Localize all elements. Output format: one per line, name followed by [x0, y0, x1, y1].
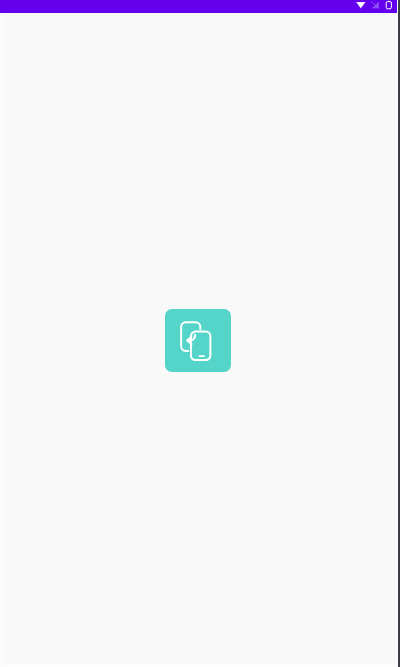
button[interactable]: Phone Clone app logo [165, 309, 231, 372]
